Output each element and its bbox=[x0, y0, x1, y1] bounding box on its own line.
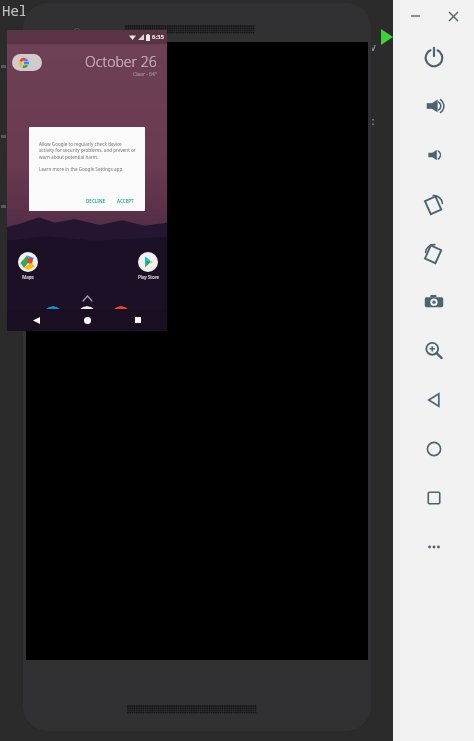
button[interactable]: Rotate right bbox=[393, 228, 474, 277]
staticText: Maps bbox=[22, 274, 34, 280]
staticText: 6:35 bbox=[152, 33, 164, 41]
button[interactable]: Gmail bbox=[77, 306, 97, 326]
button[interactable]: Google search bbox=[12, 54, 42, 71]
button[interactable]: Volume up bbox=[393, 81, 474, 130]
button[interactable]: Zoom bbox=[393, 326, 474, 375]
button[interactable]: Recent apps bbox=[131, 313, 145, 327]
button[interactable]: Home bbox=[393, 424, 474, 473]
button[interactable]: ACCEPT bbox=[114, 196, 137, 206]
staticText: Learn more in the Google Settings app. bbox=[39, 166, 124, 172]
staticText: Play Store bbox=[138, 274, 159, 280]
button[interactable]: More bbox=[393, 522, 474, 571]
button[interactable]: Back bbox=[29, 313, 43, 327]
staticText: Allow Google to regularly check device a… bbox=[39, 141, 137, 161]
button[interactable]: Overview bbox=[393, 473, 474, 522]
button[interactable]: Play Store bbox=[135, 252, 161, 280]
staticText: Hel bbox=[2, 1, 28, 20]
button[interactable]: DECLINE bbox=[83, 196, 109, 206]
staticText: Clear · 64° bbox=[133, 71, 157, 78]
button[interactable]: Rotate left bbox=[393, 179, 474, 228]
button[interactable]: Minimize bbox=[402, 3, 428, 29]
button[interactable]: Take screenshot bbox=[393, 277, 474, 326]
staticText: DECLINE bbox=[86, 198, 106, 204]
staticText: lv: bbox=[358, 114, 376, 128]
button[interactable]: Back bbox=[393, 375, 474, 424]
button[interactable]: Home bbox=[80, 313, 94, 327]
staticText: ACCEPT bbox=[117, 198, 134, 204]
button[interactable]: Maps bbox=[15, 252, 41, 280]
button[interactable]: Volume down bbox=[393, 130, 474, 179]
button[interactable]: Close bbox=[440, 3, 466, 29]
button[interactable]: Power bbox=[393, 32, 474, 81]
button[interactable]: Chrome bbox=[111, 306, 131, 326]
staticText: October 26 bbox=[85, 52, 157, 71]
button[interactable]: Messages bbox=[43, 306, 63, 326]
staticText: tiv bbox=[358, 40, 376, 54]
